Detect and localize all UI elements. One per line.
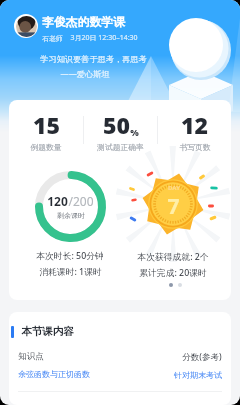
staticText: 50 [103, 109, 130, 140]
staticText: 石老师 [42, 34, 63, 43]
staticText: 学习知识要善于思考，再思考 [40, 54, 147, 64]
staticText: 7 [167, 192, 180, 221]
button[interactable]: 针对期末考试 [174, 370, 222, 380]
staticText: 15 [33, 109, 60, 140]
staticText: 测试题正确率 [97, 142, 144, 152]
staticText: 累计完成: 20课时 [139, 267, 207, 279]
button[interactable]: 余弦函数与正切函数 [18, 369, 90, 379]
staticText: 分数(参考) [182, 351, 222, 363]
staticText: /200 [68, 193, 94, 209]
button[interactable]: 15 [9, 109, 83, 152]
button[interactable]: 50 [84, 109, 157, 152]
staticText: 3月20日 12:30–14:30 [70, 33, 138, 43]
staticText: 消耗课时: 1课时 [39, 266, 102, 278]
staticText: 12 [181, 109, 208, 140]
staticText: 本次获得成就: 2个 [137, 251, 209, 263]
staticText: 例题数量 [30, 142, 62, 152]
button[interactable]: 本节课内容 [9, 325, 231, 338]
staticText: 剩余课时 [57, 211, 85, 220]
staticText: 知识点 [18, 351, 44, 362]
staticText: % [130, 126, 139, 138]
staticText: ——爱心斯坦 [60, 68, 110, 79]
staticText: 书写页数 [179, 142, 211, 152]
staticText: DAY [168, 184, 180, 192]
button[interactable]: 12 [158, 109, 231, 152]
staticText: 本节课内容 [21, 325, 74, 338]
staticText: 120 [47, 193, 68, 209]
button[interactable]: 李俊杰的数学课 [14, 14, 240, 43]
staticText: 本次时长: 50分钟 [36, 250, 104, 262]
staticText: 李俊杰的数学课 [42, 15, 125, 30]
